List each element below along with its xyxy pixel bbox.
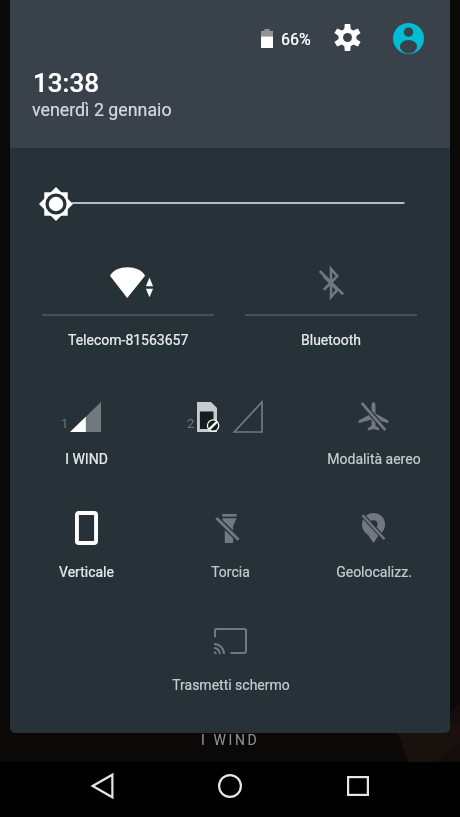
staticText: Trasmetti schermo [172,677,290,693]
button[interactable]: Mobile data, I WIND [15,360,158,472]
staticText: I WIND [65,451,108,467]
button[interactable]: Cast screen [159,585,302,697]
button[interactable]: Brightness [29,177,424,229]
staticText: Telecom-81563657 [68,332,189,348]
button[interactable]: Back [75,759,129,813]
button[interactable]: User profile [386,16,431,61]
button[interactable]: Recent apps [331,759,385,813]
button[interactable]: Settings [325,15,370,60]
staticText: Torcia [211,564,250,580]
staticText: Geolocalizz. [336,564,412,580]
button[interactable]: Airplane mode [302,360,445,472]
staticText: 66% [281,30,311,49]
staticText: venerdì 2 gennaio [32,99,172,120]
button[interactable]: Wi-Fi, Telecom-81563657 [10,227,225,346]
button[interactable]: Screen rotation: portrait [15,472,158,584]
button[interactable]: Bluetooth [225,227,440,346]
staticText: 2 [187,416,195,431]
staticText: Bluetooth [301,332,361,348]
button[interactable]: Flashlight [159,472,302,584]
button[interactable]: SIM 2 disabled [159,360,302,472]
staticText: 13:38 [33,68,99,98]
staticText: Verticale [59,564,114,580]
button[interactable]: Home [203,759,257,813]
button[interactable]: Location [302,472,445,584]
staticText: 1 [61,416,69,431]
staticText: Modalità aereo [327,451,421,467]
staticText: I WIND [201,732,260,748]
